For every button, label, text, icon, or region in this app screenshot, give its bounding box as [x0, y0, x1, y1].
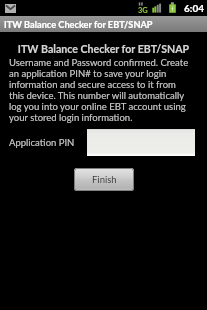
staticText: Username and Password confirmed. Create — [9, 57, 189, 68]
staticText: log you into your online EBT account usi… — [9, 101, 186, 112]
staticText: 6:04 — [184, 2, 204, 14]
staticText: ITW Balance Checker for EBT/SNAP — [0, 43, 207, 56]
button[interactable]: Application PIN input — [87, 129, 195, 156]
staticText: an application PIN# to save your login — [9, 68, 167, 79]
staticText: your stored login information. — [9, 112, 133, 123]
staticText: Finish — [92, 174, 117, 185]
staticText: this device. This number will automatica… — [9, 90, 185, 101]
staticText: Application PIN — [9, 137, 75, 148]
other: New email — [5, 4, 16, 13]
staticText: information and secure access to it from — [9, 79, 176, 90]
button[interactable]: Finish — [74, 168, 134, 191]
staticText: ITW Balance Checker for EBT/SNAP — [4, 19, 153, 30]
staticText: 3G — [138, 6, 148, 15]
